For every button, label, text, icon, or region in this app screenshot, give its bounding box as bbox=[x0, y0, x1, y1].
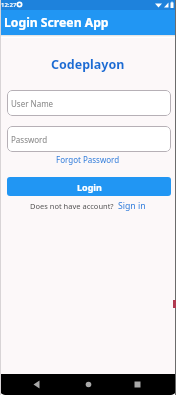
staticText: Login Screen App bbox=[4, 14, 109, 31]
staticText: Login bbox=[77, 181, 102, 193]
staticText: Does not have account? bbox=[30, 201, 114, 211]
button[interactable]: Login bbox=[7, 177, 171, 196]
staticText: Codeplayon bbox=[51, 56, 125, 73]
button[interactable] bbox=[33, 380, 41, 389]
button[interactable]: Password bbox=[7, 126, 171, 152]
staticText: Password bbox=[11, 134, 48, 145]
staticText: 12:27 bbox=[1, 1, 17, 9]
button[interactable]: Forgot Password bbox=[56, 154, 120, 165]
button[interactable]: Sign in bbox=[118, 200, 146, 212]
button[interactable]: User Name bbox=[7, 90, 171, 116]
button[interactable] bbox=[134, 381, 141, 388]
staticText: Forgot Password bbox=[56, 154, 120, 165]
staticText: Sign in bbox=[118, 200, 146, 212]
staticText: User Name bbox=[11, 98, 54, 109]
button[interactable] bbox=[85, 381, 92, 388]
